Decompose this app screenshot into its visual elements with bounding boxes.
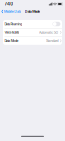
staticText: Voice & Data <box>4 30 19 34</box>
staticText: 7:40 <box>5 1 13 6</box>
staticText: Data Roaming <box>4 22 22 26</box>
staticText: Standard <box>46 39 58 43</box>
staticText: Mobile Data <box>4 9 21 14</box>
button[interactable]: Voice & Data <box>3 28 62 36</box>
staticText: Data Mode <box>25 9 40 14</box>
staticText: Data Mode <box>4 39 19 43</box>
staticText: Automatic 5G <box>39 30 58 34</box>
button[interactable]: Data Roaming <box>3 20 62 28</box>
button[interactable]: Data Mode <box>3 37 62 45</box>
button[interactable]: Mobile Data <box>0 8 22 15</box>
